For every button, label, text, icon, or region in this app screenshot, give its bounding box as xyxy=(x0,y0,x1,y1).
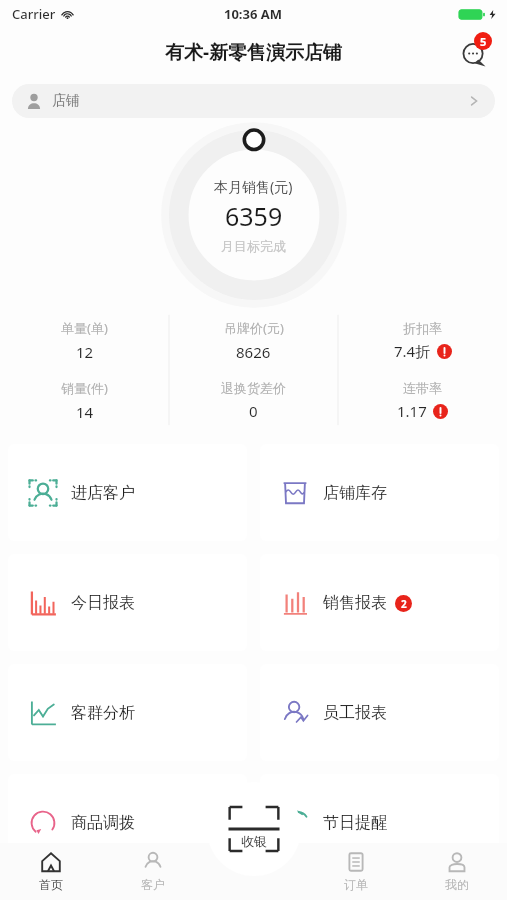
staticText: 0 xyxy=(249,401,258,421)
staticText: 店铺 xyxy=(52,92,80,110)
staticText: 月目标完成 xyxy=(221,238,286,254)
staticText: 首页 xyxy=(39,877,63,892)
staticText: 进店客户 xyxy=(71,483,135,503)
staticText: 吊牌价(元) xyxy=(224,319,284,337)
staticText: 今日报表 xyxy=(71,593,135,613)
staticText: 14 xyxy=(76,402,94,422)
button[interactable]: 商品调拨 xyxy=(8,774,247,871)
button[interactable]: 销售报表 xyxy=(260,554,499,651)
button[interactable]: 今日报表 xyxy=(8,554,247,651)
button[interactable]: 我的 xyxy=(406,843,507,900)
staticText: 有术-新零售演示店铺 xyxy=(165,39,343,65)
button[interactable]: 店铺 xyxy=(12,84,495,118)
staticText: 单量(单) xyxy=(61,319,108,337)
staticText: Carrier xyxy=(12,5,56,23)
staticText: 收银 xyxy=(241,833,267,849)
staticText: 订单 xyxy=(344,877,368,892)
button[interactable]: 员工报表 xyxy=(260,664,499,761)
button[interactable]: 客户 xyxy=(102,843,204,900)
staticText: 员工报表 xyxy=(323,703,387,723)
staticText: 商品调拨 xyxy=(71,813,135,833)
staticText: 6359 xyxy=(225,199,283,233)
staticText: 7.4折 xyxy=(394,341,431,361)
staticText: 店铺库存 xyxy=(323,483,387,503)
staticText: 销售报表 xyxy=(323,593,387,613)
button[interactable]: 客群分析 xyxy=(8,664,247,761)
staticText: 12 xyxy=(76,342,94,362)
staticText: 1.17 xyxy=(397,401,427,421)
button[interactable]: 店铺库存 xyxy=(260,444,499,541)
button[interactable]: Messages xyxy=(455,33,493,71)
button[interactable]: 订单 xyxy=(305,843,406,900)
staticText: 节日提醒 xyxy=(323,813,387,833)
staticText: 8626 xyxy=(236,342,271,362)
staticText: 客户 xyxy=(141,877,165,892)
staticText: 折扣率 xyxy=(403,320,442,336)
staticText: 5 xyxy=(480,34,487,49)
staticText: 2 xyxy=(401,597,407,611)
staticText: 退换货差价 xyxy=(221,380,286,396)
staticText: 客群分析 xyxy=(71,703,135,723)
button[interactable]: 收银 Checkout xyxy=(207,782,301,876)
button[interactable]: 节日提醒 xyxy=(260,774,499,871)
staticText: 本月销售(元) xyxy=(214,177,293,196)
button[interactable]: 进店客户 xyxy=(8,444,247,541)
staticText: 连带率 xyxy=(403,380,442,396)
staticText: 我的 xyxy=(445,877,469,892)
staticText: 销量(件) xyxy=(61,379,108,397)
staticText: 10:36 AM xyxy=(224,5,283,23)
button[interactable]: 首页 xyxy=(0,843,102,900)
